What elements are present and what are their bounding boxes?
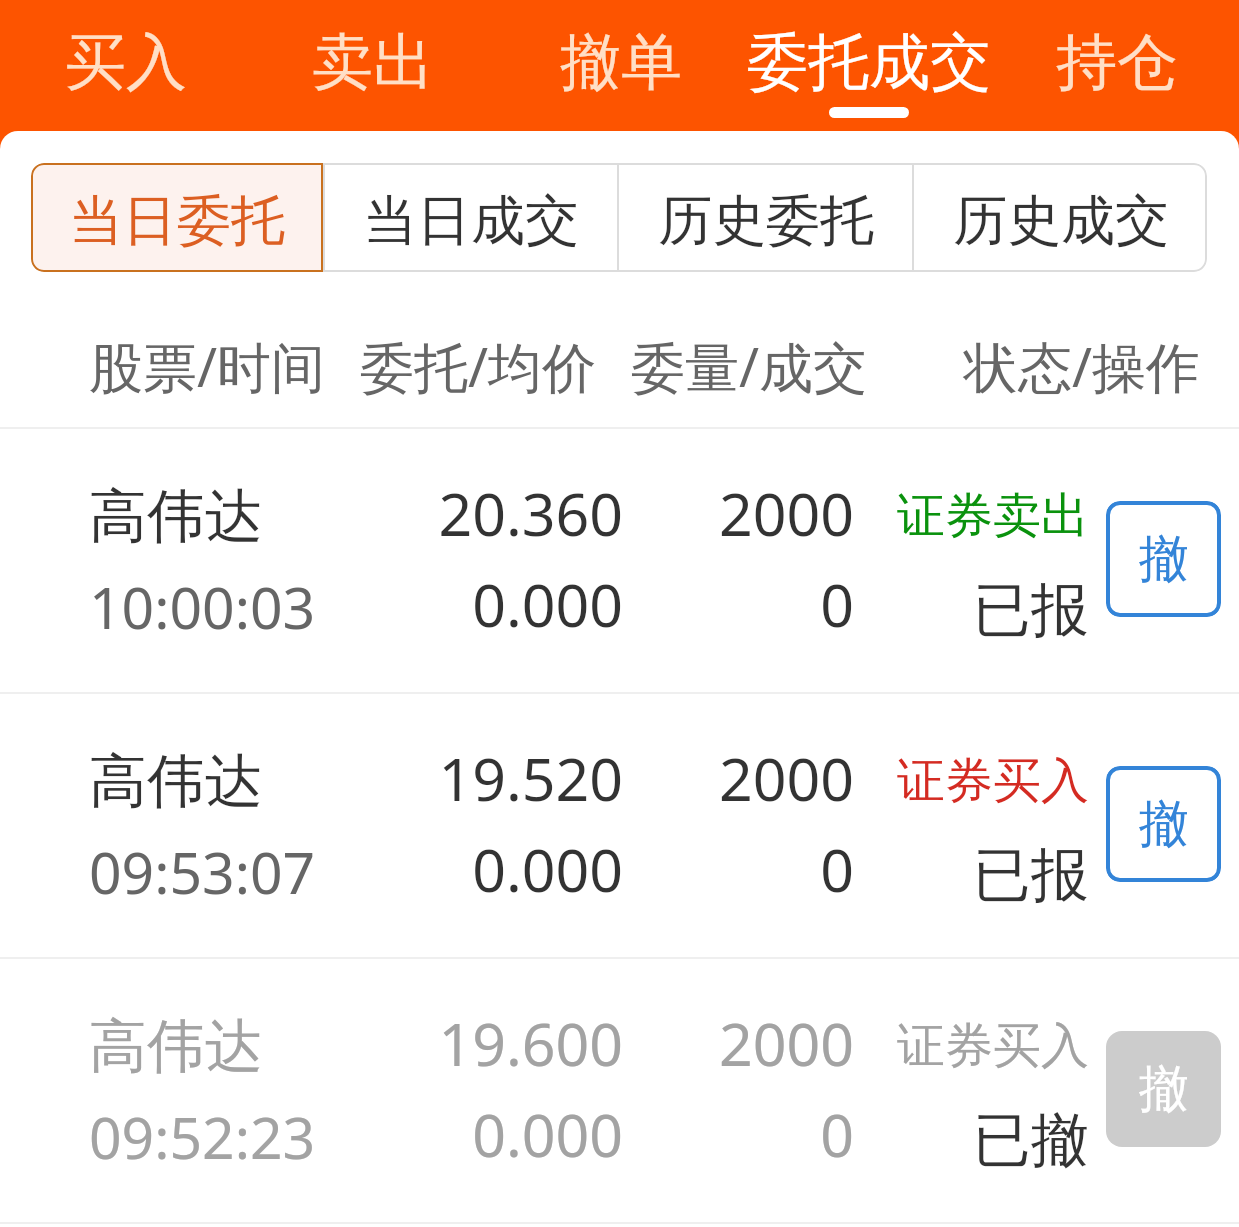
button[interactable]: 卖出 [247, 0, 495, 131]
staticText: 2000 [650, 1003, 854, 1083]
staticText: 0 [650, 1094, 854, 1174]
staticText: 已报 [862, 839, 1089, 912]
staticText: 0.000 [340, 564, 623, 644]
button[interactable]: 当日成交 [325, 163, 617, 272]
staticText: 当日委托 [69, 187, 285, 255]
button[interactable]: 委托成交 [743, 0, 991, 131]
staticText: 撤单 [560, 24, 682, 101]
staticText: 证券买入 [862, 1016, 1089, 1076]
staticText: 历史委托 [658, 187, 874, 255]
staticText: 2000 [650, 473, 854, 553]
staticText: 状态/操作 [964, 329, 1201, 403]
staticText: 19.600 [340, 1003, 623, 1083]
staticText: 09:52:23 [89, 1098, 316, 1176]
staticText: 0 [650, 829, 854, 909]
button[interactable]: 高伟达 [0, 429, 1239, 692]
staticText: 撤 [1139, 528, 1189, 591]
staticText: 股票/时间 [89, 329, 326, 403]
staticText: 历史成交 [953, 187, 1169, 255]
button[interactable]: 高伟达 [0, 694, 1239, 957]
staticText: 持仓 [1056, 24, 1178, 101]
staticText: 证券买入 [862, 751, 1089, 811]
button[interactable]: 撤单 [495, 0, 743, 131]
button[interactable]: 持仓 [991, 0, 1239, 131]
staticText: 19.520 [340, 738, 623, 818]
staticText: 卖出 [312, 24, 434, 101]
button[interactable]: 撤单 [1106, 766, 1221, 882]
button[interactable]: 历史成交 [914, 163, 1207, 272]
staticText: 买入 [65, 24, 187, 101]
button[interactable]: 撤单 [1106, 501, 1221, 617]
button[interactable]: 买入 [0, 0, 247, 131]
staticText: 10:00:03 [89, 568, 316, 646]
button[interactable]: 高伟达 [0, 959, 1239, 1222]
staticText: 已报 [862, 574, 1089, 647]
staticText: 当日成交 [363, 187, 579, 255]
staticText: 2000 [650, 738, 854, 818]
staticText: 委托成交 [747, 24, 991, 101]
staticText: 高伟达 [89, 745, 263, 818]
button[interactable]: 当日委托 [31, 163, 323, 272]
staticText: 0 [650, 564, 854, 644]
staticText: 撤 [1139, 1058, 1189, 1121]
staticText: 0.000 [340, 1094, 623, 1174]
staticText: 委托/均价 [360, 329, 597, 403]
staticText: 证券卖出 [862, 486, 1089, 546]
staticText: 0.000 [340, 829, 623, 909]
button[interactable]: 历史委托 [619, 163, 912, 272]
staticText: 09:53:07 [89, 833, 316, 911]
staticText: 高伟达 [89, 1010, 263, 1083]
staticText: 委量/成交 [631, 329, 868, 403]
staticText: 已撤 [862, 1104, 1089, 1177]
staticText: 撤 [1139, 793, 1189, 856]
staticText: 高伟达 [89, 480, 263, 553]
button[interactable]: 撤单 [1106, 1031, 1221, 1147]
staticText: 20.360 [340, 473, 623, 553]
